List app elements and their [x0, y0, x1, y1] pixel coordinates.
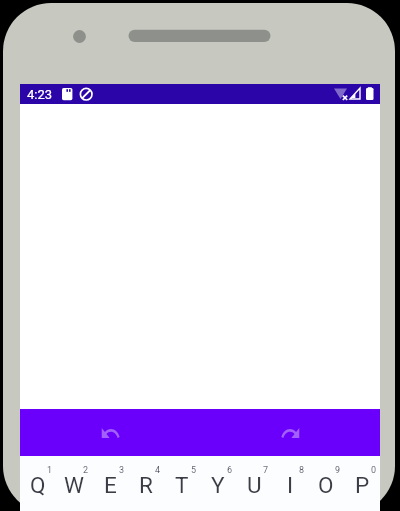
staticText: Q	[30, 472, 46, 498]
button[interactable]: 4	[128, 456, 164, 511]
staticText: 1	[47, 465, 53, 476]
button[interactable]: 1	[20, 456, 56, 511]
staticText: R	[139, 472, 153, 498]
staticText: 9	[335, 465, 341, 476]
staticText: 2	[83, 465, 89, 476]
staticText: 4	[155, 465, 161, 476]
button[interactable]: Redo	[200, 409, 380, 456]
button[interactable]: 8	[272, 456, 308, 511]
button[interactable]: 6	[200, 456, 236, 511]
button[interactable]: 2	[56, 456, 92, 511]
staticText: U	[247, 472, 262, 498]
staticText: P	[355, 472, 370, 498]
button[interactable]: 0	[344, 456, 380, 511]
staticText: T	[175, 472, 189, 498]
staticText: E	[104, 472, 117, 498]
staticText: 4:23	[27, 87, 53, 102]
staticText: W	[64, 472, 84, 498]
staticText: I	[287, 472, 294, 498]
staticText: 0	[371, 465, 377, 476]
staticText: 7	[263, 465, 269, 476]
button[interactable]: Undo	[20, 409, 200, 456]
staticText: O	[318, 472, 334, 498]
button[interactable]: 5	[164, 456, 200, 511]
button[interactable]: 3	[92, 456, 128, 511]
staticText: 5	[191, 465, 197, 476]
button[interactable]: 9	[308, 456, 344, 511]
staticText: Y	[211, 472, 225, 498]
button[interactable]: 7	[236, 456, 272, 511]
staticText: 6	[227, 465, 233, 476]
staticText: 3	[119, 465, 125, 476]
staticText: 8	[299, 465, 305, 476]
